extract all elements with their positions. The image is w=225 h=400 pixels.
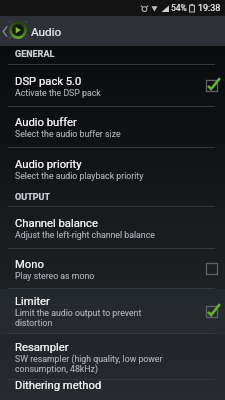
staticText: Activate the DSP pack — [15, 88, 101, 98]
button[interactable]: Audio buffer — [0, 107, 225, 148]
staticText: 19:38 — [198, 3, 221, 14]
button[interactable]: DSP pack 5.0 — [0, 65, 225, 107]
button[interactable]: Checked — [203, 77, 221, 95]
staticText: Audio buffer — [15, 116, 77, 129]
staticText: DSP pack 5.0 — [15, 75, 82, 88]
staticText: Resampler — [15, 341, 69, 354]
staticText: GENERAL — [15, 49, 55, 60]
button[interactable]: Checked — [203, 303, 221, 321]
staticText: Mono — [15, 258, 44, 271]
staticText: Limiter — [15, 295, 50, 308]
staticText: 54% — [171, 3, 187, 13]
button[interactable]: Audio priority — [0, 148, 225, 190]
staticText: SW resampler (high quality, low power co… — [15, 354, 176, 374]
button[interactable]: Channel balance — [0, 207, 225, 249]
staticText: Limit the audio output to prevent distor… — [15, 308, 176, 328]
staticText: Audio priority — [15, 158, 82, 171]
staticText: Dithering method — [15, 379, 102, 392]
staticText: Play stereo as mono — [15, 271, 95, 281]
button[interactable]: Navigate up — [0, 16, 27, 46]
staticText: Audio — [31, 25, 62, 39]
button[interactable]: Dithering method — [0, 380, 225, 400]
staticText: Channel balance — [15, 217, 98, 230]
button[interactable]: Unchecked — [203, 260, 221, 278]
staticText: Select the audio playback priority — [15, 171, 144, 181]
staticText: Select the audio buffer size — [15, 129, 121, 139]
button[interactable]: Limiter — [0, 289, 225, 334]
staticText: OUTPUT — [15, 192, 51, 203]
staticText: Adjust the left-right channel balance — [15, 230, 155, 240]
button[interactable]: Resampler — [0, 334, 225, 380]
button[interactable]: Mono — [0, 249, 225, 289]
